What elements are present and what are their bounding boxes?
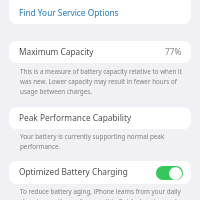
button[interactable]: Peak Performance Capability [9, 107, 191, 129]
staticText: This is a measure of battery capacity re… [20, 67, 183, 96]
button[interactable]: Find Your Service Options [9, 0, 191, 24]
button[interactable]: Maximum Capacity [9, 41, 191, 63]
staticText: Peak Performance Capability [19, 112, 132, 123]
button[interactable]: Optimized Battery Charging [9, 161, 191, 184]
staticText: Maximum Capacity [19, 46, 94, 57]
staticText: Find Your Service Options [19, 7, 119, 18]
staticText: 77% [165, 46, 182, 57]
staticText: To reduce battery aging, iPhone learns f… [20, 187, 183, 200]
staticText: Optimized Battery Charging [19, 166, 128, 177]
staticText: Your battery is currently supporting nor… [20, 132, 183, 151]
button[interactable]: Optimized Battery Charging [156, 166, 183, 180]
